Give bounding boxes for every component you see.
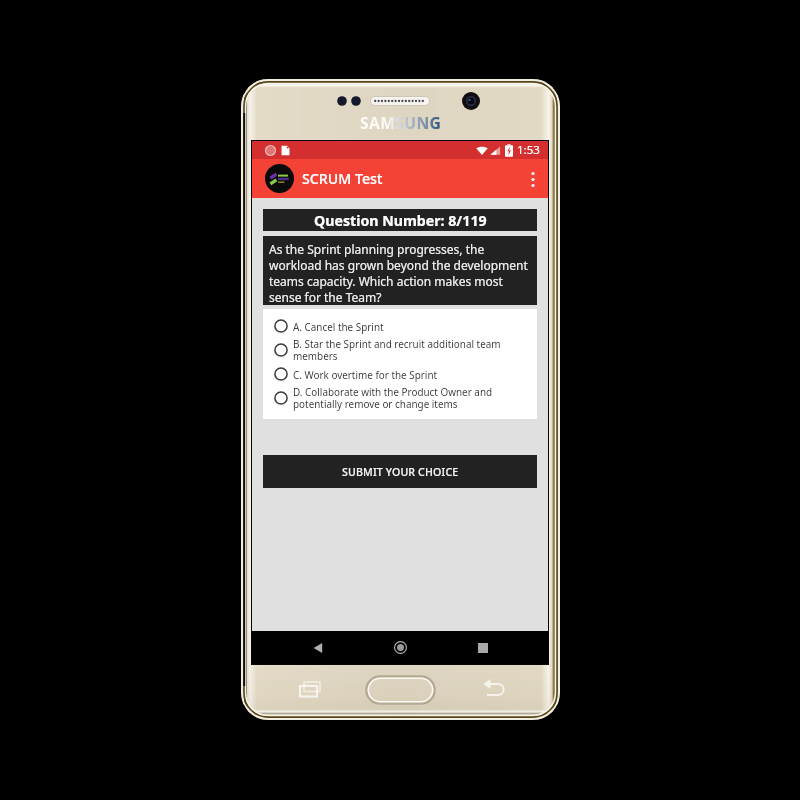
- staticText: As the Sprint planning progresses, the w…: [269, 241, 532, 305]
- staticText: Question Number: 8/119: [314, 211, 487, 230]
- button[interactable]: C. Work overtime for the Sprint: [263, 365, 537, 383]
- staticText: B. Star the Sprint and recruit additiona…: [293, 337, 529, 363]
- staticText: A. Cancel the Sprint: [293, 320, 384, 333]
- staticText: D. Collaborate with the Product Owner an…: [293, 385, 529, 411]
- staticText: SUBMIT YOUR CHOICE: [342, 465, 459, 479]
- button[interactable]: More options: [521, 167, 545, 191]
- button[interactable]: Recent apps: [466, 631, 499, 664]
- button[interactable]: A. Cancel the Sprint: [263, 317, 537, 335]
- button[interactable]: Back: [301, 631, 334, 664]
- button[interactable]: Home: [384, 631, 417, 664]
- staticText: C. Work overtime for the Sprint: [293, 368, 438, 381]
- button[interactable]: B. Star the Sprint and recruit additiona…: [263, 335, 537, 365]
- staticText: SAMSUNG: [360, 112, 442, 133]
- button[interactable]: SUBMIT YOUR CHOICE: [263, 455, 537, 488]
- staticText: SCRUM Test: [302, 169, 383, 188]
- button[interactable]: D. Collaborate with the Product Owner an…: [263, 383, 537, 413]
- staticText: 1:53: [517, 142, 540, 158]
